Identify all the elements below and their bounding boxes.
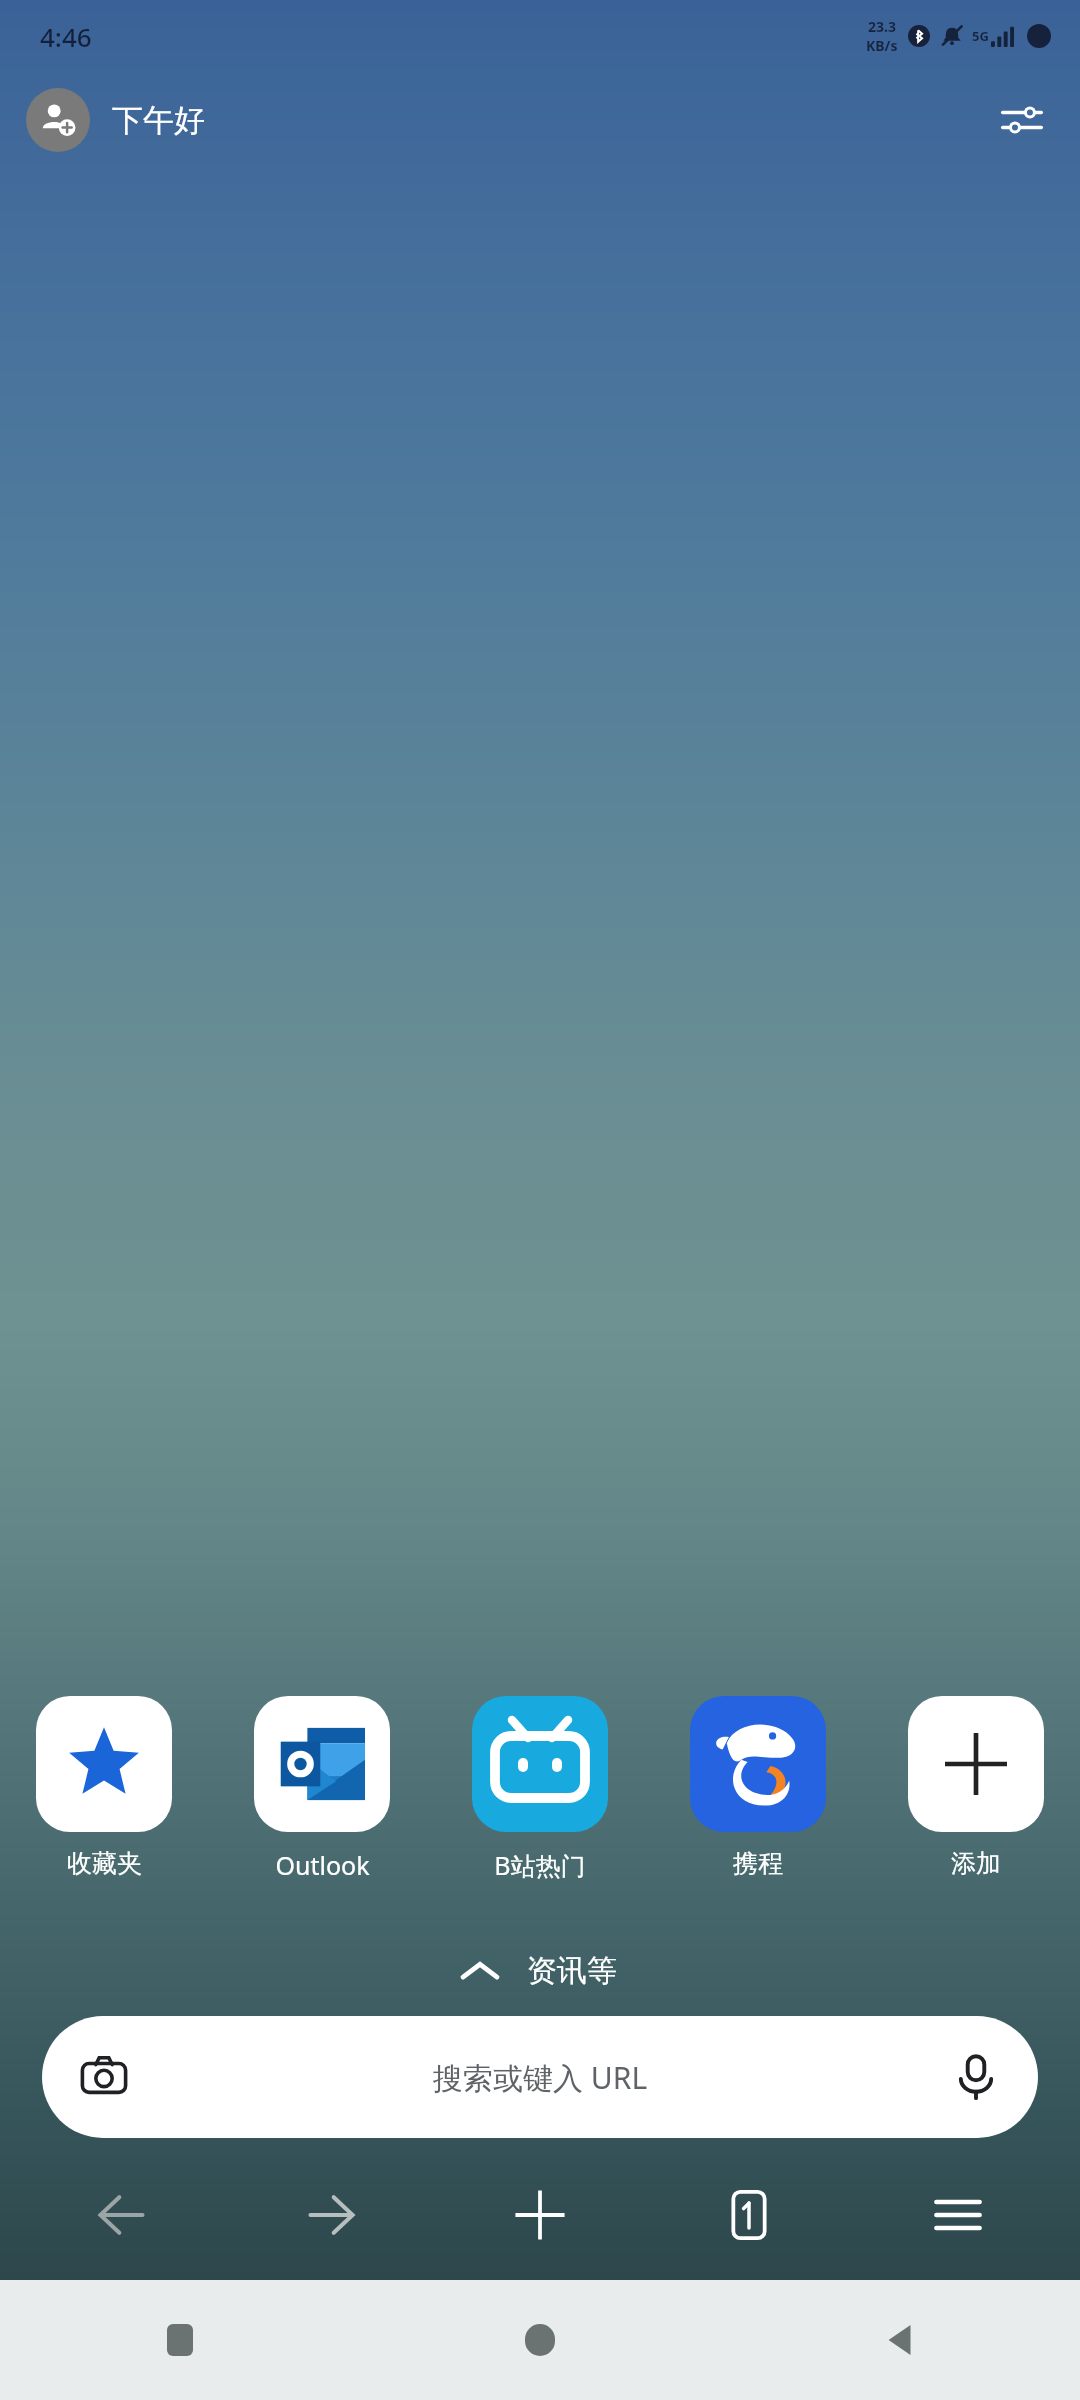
button[interactable]: Account <box>26 88 90 152</box>
button[interactable]: Voice search <box>944 2045 1008 2109</box>
button[interactable]: 资讯等 <box>437 1944 643 1998</box>
button[interactable]: Search by camera <box>42 2016 1038 2138</box>
other: Add shortcut <box>908 1696 1044 1832</box>
staticText: Outlook <box>275 1848 370 1882</box>
button[interactable]: B站热门 <box>470 1696 610 1882</box>
staticText: KB/s <box>866 36 898 55</box>
button[interactable]: Menu <box>853 2160 1062 2270</box>
button[interactable]: Back <box>720 2280 1080 2400</box>
button[interactable]: New tab <box>435 2160 644 2270</box>
staticText: 4:46 <box>40 19 92 54</box>
button[interactable]: 收藏夹 <box>34 1696 174 1879</box>
button[interactable]: Recents <box>0 2280 360 2400</box>
staticText: 下午好 <box>112 101 205 140</box>
button[interactable]: Settings <box>990 88 1054 152</box>
staticText: 收藏夹 <box>67 1848 142 1879</box>
button[interactable]: 携程 <box>688 1696 828 1879</box>
button[interactable]: Add shortcut <box>906 1696 1046 1879</box>
button[interactable]: Home <box>360 2280 720 2400</box>
staticText: 23.3 <box>868 17 896 36</box>
button[interactable]: Search by camera <box>72 2045 136 2109</box>
staticText: 5G <box>972 27 989 45</box>
button[interactable]: Forward <box>226 2160 435 2270</box>
staticText: 搜索或键入 URL <box>433 2057 648 2098</box>
staticText: 添加 <box>951 1848 1001 1879</box>
staticText: 资讯等 <box>527 1952 617 1990</box>
button[interactable]: Outlook <box>252 1696 392 1882</box>
button[interactable]: Tabs <box>644 2160 853 2270</box>
button[interactable]: Back <box>18 2160 226 2270</box>
staticText: B站热门 <box>494 1848 586 1882</box>
staticText: 携程 <box>733 1848 783 1879</box>
